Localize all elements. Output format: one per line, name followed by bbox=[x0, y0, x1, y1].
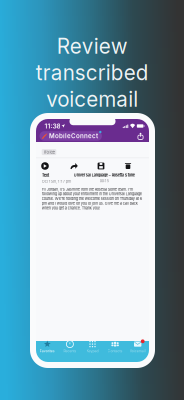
staticText: Recents bbox=[63, 349, 76, 353]
staticText: Text bbox=[42, 173, 50, 178]
staticText: Oct 15th, 1:17 pm bbox=[42, 179, 71, 184]
staticText: Favorites bbox=[40, 349, 55, 353]
button[interactable]: Share bbox=[134, 130, 146, 142]
button[interactable]: Contacts bbox=[104, 340, 126, 354]
button[interactable]: Delete bbox=[122, 161, 134, 170]
button[interactable]: Keypad bbox=[81, 340, 104, 354]
staticText: Hi Jordan, it's Jasmine from the Rosetta… bbox=[42, 187, 142, 210]
staticText: Review transcribed voicemail bbox=[35, 33, 148, 112]
button[interactable]: Favorites bbox=[36, 340, 59, 354]
staticText: Universal Language – Rosetta Stone bbox=[74, 173, 135, 177]
staticText: Voicemail bbox=[130, 349, 146, 353]
button[interactable]: Forward bbox=[68, 161, 80, 170]
button[interactable]: Voice bbox=[42, 149, 56, 155]
staticText: Contacts bbox=[108, 349, 123, 353]
staticText: Keypad bbox=[86, 349, 98, 353]
button[interactable]: Recents bbox=[59, 340, 81, 354]
staticText: 11:38 bbox=[44, 122, 60, 130]
button[interactable]: Play bbox=[39, 161, 51, 170]
button[interactable]: Save bbox=[95, 161, 107, 170]
staticText: 00:15 bbox=[100, 179, 109, 183]
staticText: MobileConnect bbox=[49, 132, 98, 140]
staticText: Voice bbox=[43, 149, 54, 155]
button[interactable]: MobileConnect bbox=[39, 131, 102, 141]
button[interactable]: Voicemail bbox=[126, 340, 149, 354]
